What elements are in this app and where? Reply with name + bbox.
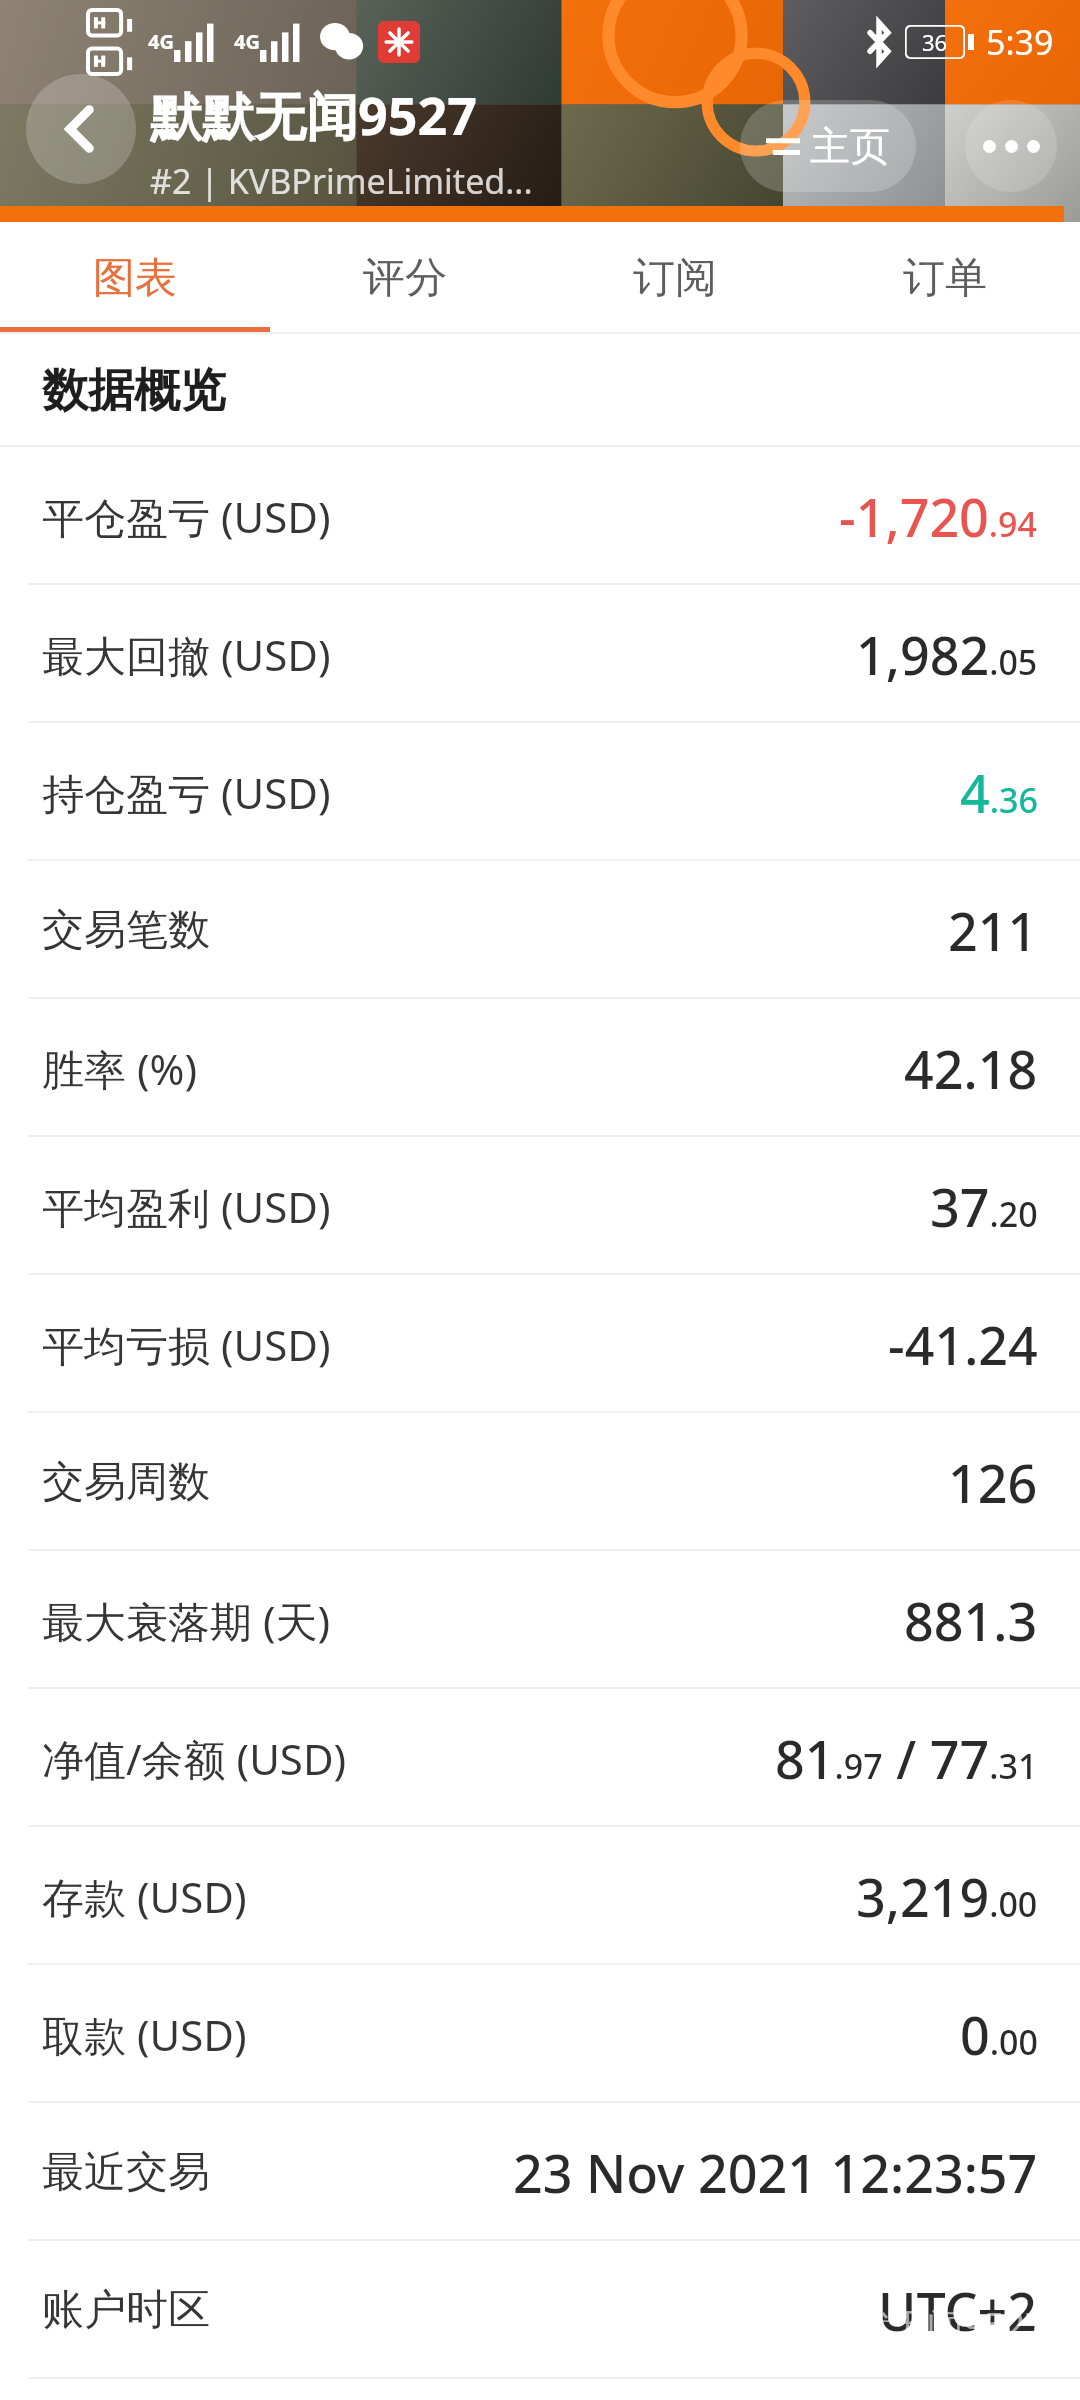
staticText: 订单 xyxy=(903,252,987,305)
button[interactable]: 返回 xyxy=(26,74,136,184)
button[interactable]: 订阅 xyxy=(540,222,810,334)
staticText: 1,982.05 xyxy=(856,619,1038,690)
staticText: 最大衰落期 (天) xyxy=(42,1592,331,1649)
staticText: 交易周数 xyxy=(42,1456,210,1509)
button[interactable]: 最大回撤 (USD) xyxy=(0,585,1080,723)
staticText: 胜率 (%) xyxy=(42,1040,198,1097)
staticText: -1,720.94 xyxy=(839,481,1038,552)
staticText: 订阅 xyxy=(633,252,717,305)
staticText: 取款 (USD) xyxy=(42,2006,247,2063)
button[interactable]: 订单 xyxy=(810,222,1080,334)
button[interactable]: 存款 (USD) xyxy=(0,1827,1080,1965)
staticText: 评分 xyxy=(363,252,447,305)
staticText: 主页 xyxy=(810,121,890,171)
staticText: 默默无闻9527 xyxy=(150,79,477,150)
staticText: 数据概览 xyxy=(42,362,226,420)
button[interactable]: 胜率 (%) xyxy=(0,999,1080,1137)
button[interactable]: 持仓盈亏 (USD) xyxy=(0,723,1080,861)
staticText: 4G xyxy=(234,28,260,55)
staticText: 0.00 xyxy=(960,1999,1038,2070)
staticText: 最近交易 xyxy=(42,2146,210,2199)
staticText: 881.3 xyxy=(904,1585,1038,1656)
staticText: 最大回撤 (USD) xyxy=(42,626,331,683)
staticText: UTC+2 xyxy=(878,2275,1038,2346)
button[interactable]: 平均亏损 (USD) xyxy=(0,1275,1080,1413)
staticText: 持仓盈亏 (USD) xyxy=(42,764,331,821)
staticText: 存款 (USD) xyxy=(42,1868,247,1925)
staticText: f) @默默无闻9527 xyxy=(753,2301,1046,2350)
staticText: 平仓盈亏 (USD) xyxy=(42,488,331,545)
staticText: 36 xyxy=(922,27,948,57)
button[interactable]: 图表 xyxy=(0,222,270,334)
button[interactable]: 交易笔数 xyxy=(0,861,1080,999)
staticText: 4G xyxy=(148,28,174,55)
staticText: 4.36 xyxy=(960,757,1038,828)
staticText: 图表 xyxy=(93,252,177,305)
button[interactable]: 最近交易 xyxy=(0,2103,1080,2241)
staticText: 37.20 xyxy=(930,1171,1038,1242)
button[interactable]: 主页 xyxy=(766,100,890,192)
staticText: 126 xyxy=(948,1447,1038,1518)
button[interactable]: 账户时区 xyxy=(0,2241,1080,2379)
staticText: #2 | KVBPrimeLimited... xyxy=(150,158,533,204)
button[interactable]: 最大衰落期 (天) xyxy=(0,1551,1080,1689)
staticText: 平均盈利 (USD) xyxy=(42,1178,331,1235)
staticText: 23 Nov 2021 12:23:57 xyxy=(513,2137,1038,2208)
staticText: 42.18 xyxy=(904,1033,1038,1104)
staticText: 81.97 / 77.31 xyxy=(775,1723,1038,1794)
button[interactable]: 取款 (USD) xyxy=(0,1965,1080,2103)
button[interactable]: 平均盈利 (USD) xyxy=(0,1137,1080,1275)
staticText: 净值/余额 (USD) xyxy=(42,1730,347,1787)
button[interactable]: 评分 xyxy=(270,222,540,334)
button[interactable]: 净值/余额 (USD) xyxy=(0,1689,1080,1827)
staticText: 交易笔数 xyxy=(42,904,210,957)
staticText: -41.24 xyxy=(888,1309,1038,1380)
button[interactable]: 平仓盈亏 (USD) xyxy=(0,447,1080,585)
staticText: 平均亏损 (USD) xyxy=(42,1316,331,1373)
staticText: 211 xyxy=(948,895,1038,966)
staticText: 账户时区 xyxy=(42,2284,210,2337)
button[interactable]: 更多 xyxy=(965,100,1057,192)
staticText: 3,219.00 xyxy=(856,1861,1038,1932)
staticText: 5:39 xyxy=(986,19,1054,65)
button[interactable]: 交易周数 xyxy=(0,1413,1080,1551)
